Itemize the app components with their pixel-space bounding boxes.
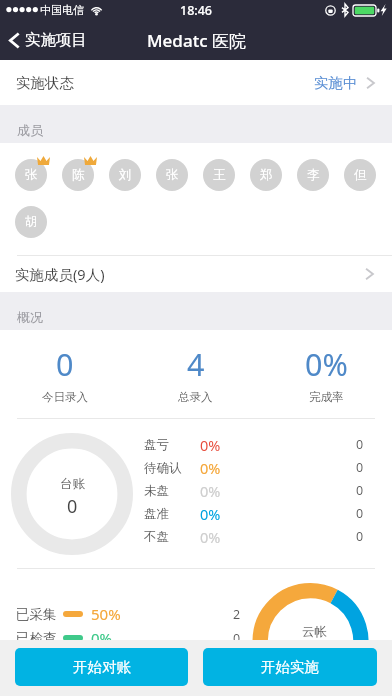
staticText: 0 xyxy=(356,505,364,522)
button[interactable]: 开始对账 xyxy=(15,648,188,686)
staticText: 张 xyxy=(166,167,179,183)
staticText: 0 xyxy=(233,630,241,647)
staticText: 0% xyxy=(91,628,113,648)
staticText: Medatc 医院 xyxy=(147,29,246,52)
staticText: 未盘 xyxy=(144,483,169,499)
staticText: 盘亏 xyxy=(144,437,169,453)
staticText: 0% xyxy=(305,343,348,385)
staticText: 今日录入 xyxy=(42,390,88,404)
staticText: 总录入 xyxy=(178,390,213,404)
staticText: 已检查 xyxy=(16,630,57,647)
staticText: 但 xyxy=(354,167,367,183)
staticText: 实施中 xyxy=(314,74,358,92)
staticText: 0% xyxy=(200,481,221,501)
button[interactable]: 张 xyxy=(156,159,188,191)
button[interactable]: 实施成员(9人) xyxy=(0,255,392,292)
staticText: 已采集 xyxy=(16,606,57,623)
staticText: 0 xyxy=(67,494,78,519)
button[interactable]: 陈 xyxy=(62,159,94,191)
staticText: 实施项目 xyxy=(25,30,87,50)
staticText: 待确认 xyxy=(144,460,182,476)
staticText: 0 xyxy=(356,436,364,453)
button[interactable]: 刘 xyxy=(109,159,141,191)
staticText: 开始实施 xyxy=(261,658,319,676)
staticText: 0 xyxy=(356,459,364,476)
staticText: 王 xyxy=(213,167,226,183)
staticText: 胡 xyxy=(25,214,38,230)
staticText: 开始对账 xyxy=(73,658,131,676)
staticText: 中国电信 xyxy=(40,3,84,17)
staticText: 0% xyxy=(200,504,221,524)
staticText: 完成率 xyxy=(309,390,344,404)
staticText: 0% xyxy=(200,435,221,455)
staticText: 0% xyxy=(200,458,221,478)
staticText: 郑 xyxy=(260,167,273,183)
staticText: 张 xyxy=(25,167,38,183)
staticText: 盘准 xyxy=(144,506,169,522)
staticText: 18:46 xyxy=(180,2,213,19)
staticText: 概况 xyxy=(17,309,43,325)
staticText: 不盘 xyxy=(144,529,169,545)
button[interactable]: 胡 xyxy=(15,206,47,238)
staticText: 刘 xyxy=(119,167,132,183)
staticText: 4 xyxy=(187,343,205,385)
button[interactable]: 张 xyxy=(15,159,47,191)
staticText: 0 xyxy=(356,528,364,545)
button[interactable]: 开始实施 xyxy=(203,648,377,686)
button[interactable]: 但 xyxy=(344,159,376,191)
staticText: 0% xyxy=(200,527,221,547)
staticText: 2 xyxy=(233,606,241,623)
staticText: 0 xyxy=(56,343,74,385)
staticText: 50% xyxy=(91,604,121,624)
staticText: 陈 xyxy=(72,167,85,183)
staticText: 成员 xyxy=(17,122,43,138)
button[interactable]: 郑 xyxy=(250,159,282,191)
staticText: 0 xyxy=(356,482,364,499)
button[interactable]: Back xyxy=(0,20,95,60)
button[interactable]: 李 xyxy=(297,159,329,191)
staticText: 台账 xyxy=(60,476,85,492)
button[interactable]: 王 xyxy=(203,159,235,191)
staticText: 云帐 xyxy=(302,624,327,640)
staticText: 李 xyxy=(307,167,320,183)
button[interactable]: 实施状态 xyxy=(0,60,392,105)
staticText: 实施状态 xyxy=(16,74,74,92)
staticText: 实施成员(9人) xyxy=(15,264,105,284)
